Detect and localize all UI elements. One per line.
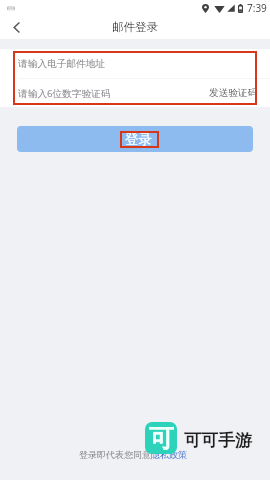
staticText: 请输入电子邮件地址 — [18, 58, 106, 70]
staticText: 7:39 — [247, 1, 267, 15]
staticText: 发送验证码 — [209, 87, 258, 99]
button[interactable]: 隐私政策 — [151, 449, 187, 460]
button[interactable]: 请输入电子邮件地址 — [0, 49, 270, 78]
staticText: 邮件登录 — [112, 20, 158, 34]
button[interactable]: Back — [0, 15, 30, 39]
staticText: 隐私政策 — [151, 449, 187, 460]
staticText: 可可手游 — [184, 430, 252, 451]
staticText: 请输入6位数字验证码 — [18, 87, 111, 100]
staticText: 登录即代表您同意 — [79, 449, 151, 460]
button[interactable]: 登录 — [17, 126, 253, 152]
staticText: 登录 — [125, 131, 152, 148]
staticText: 可 — [149, 423, 174, 454]
button[interactable]: 发送验证码 — [209, 87, 258, 99]
